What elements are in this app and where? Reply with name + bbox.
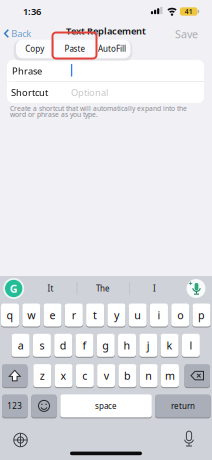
staticText: z: [40, 368, 45, 383]
staticText: It: [47, 283, 53, 294]
staticText: The: [96, 283, 110, 294]
staticText: Shortcut: [11, 86, 48, 99]
staticText: Create a shortcut that will automaticall…: [10, 104, 187, 113]
staticText: 123: [7, 401, 22, 411]
button[interactable]: The: [78, 278, 128, 298]
button[interactable]: [184, 364, 210, 387]
staticText: w: [27, 308, 35, 322]
button[interactable]: x: [55, 364, 73, 387]
button[interactable]: t: [86, 303, 104, 326]
button[interactable]: s: [33, 334, 51, 357]
button[interactable]: I: [129, 278, 179, 298]
button[interactable]: It: [25, 278, 75, 298]
button[interactable]: +: [186, 279, 205, 298]
button[interactable]: f: [75, 334, 93, 357]
staticText: e: [50, 308, 56, 322]
staticText: v: [104, 368, 109, 383]
staticText: y: [114, 308, 119, 322]
button[interactable]: G: [3, 278, 24, 299]
button[interactable]: u: [129, 303, 147, 326]
staticText: u: [134, 308, 141, 322]
staticText: Save: [175, 27, 198, 41]
staticText: word or phrase as you type.: [10, 110, 98, 119]
staticText: b: [124, 368, 131, 383]
button[interactable]: p: [192, 303, 210, 326]
staticText: s: [39, 338, 44, 352]
button[interactable]: [31, 394, 57, 417]
staticText: h: [123, 338, 130, 352]
staticText: Back: [11, 27, 31, 40]
button[interactable]: Paste: [54, 39, 96, 58]
button[interactable]: Shortcut: [7, 82, 204, 103]
staticText: +: [188, 279, 192, 288]
staticText: q: [6, 308, 13, 322]
button[interactable]: n: [140, 364, 158, 387]
staticText: r: [72, 308, 76, 322]
staticText: d: [60, 338, 67, 352]
button[interactable]: h: [118, 334, 136, 357]
staticText: x: [61, 368, 67, 383]
button[interactable]: y: [107, 303, 125, 326]
button[interactable]: m: [161, 364, 179, 387]
staticText: return: [171, 401, 195, 411]
button[interactable]: Save: [175, 27, 198, 41]
button[interactable]: g: [97, 334, 115, 357]
button[interactable]: v: [97, 364, 115, 387]
staticText: Optional: [71, 86, 108, 99]
staticText: space: [95, 401, 117, 411]
button[interactable]: 123: [2, 394, 27, 417]
button[interactable]: [2, 364, 27, 387]
button[interactable]: l: [182, 334, 200, 357]
staticText: Paste: [64, 43, 85, 54]
button[interactable]: o: [171, 303, 189, 326]
button[interactable]: Copy: [16, 39, 53, 58]
button[interactable]: Phrase: [7, 60, 204, 81]
button[interactable]: w: [22, 303, 40, 326]
staticText: j: [147, 338, 150, 352]
button[interactable]: return: [155, 394, 211, 417]
button[interactable]: [182, 431, 195, 447]
staticText: i: [157, 308, 160, 322]
button[interactable]: k: [161, 334, 179, 357]
staticText: o: [177, 308, 183, 322]
staticText: G: [10, 282, 18, 296]
button[interactable]: AutoFill: [95, 39, 128, 58]
button[interactable]: i: [150, 303, 168, 326]
button[interactable]: d: [54, 334, 72, 357]
staticText: c: [82, 368, 87, 383]
staticText: g: [102, 338, 109, 352]
button[interactable]: c: [76, 364, 94, 387]
staticText: k: [167, 338, 173, 352]
staticText: Copy: [25, 43, 44, 54]
button[interactable]: b: [118, 364, 136, 387]
button[interactable]: space: [60, 394, 152, 417]
staticText: a: [18, 338, 24, 352]
staticText: p: [198, 308, 205, 322]
button[interactable]: q: [1, 303, 19, 326]
button[interactable]: j: [139, 334, 157, 357]
staticText: f: [82, 338, 86, 352]
staticText: 1:36: [23, 5, 41, 18]
button[interactable]: Back: [4, 27, 31, 40]
button[interactable]: [13, 432, 28, 447]
staticText: l: [189, 338, 192, 352]
staticText: Text Replacement: [66, 25, 146, 37]
button[interactable]: e: [44, 303, 62, 326]
button[interactable]: r: [65, 303, 83, 326]
staticText: t: [93, 308, 97, 322]
staticText: Phrase: [12, 65, 42, 77]
button[interactable]: a: [12, 334, 30, 357]
staticText: 41: [185, 7, 193, 16]
button[interactable]: z: [33, 364, 51, 387]
staticText: I: [153, 283, 156, 294]
staticText: AutoFill: [98, 43, 126, 54]
staticText: n: [145, 368, 152, 383]
staticText: m: [165, 368, 175, 383]
